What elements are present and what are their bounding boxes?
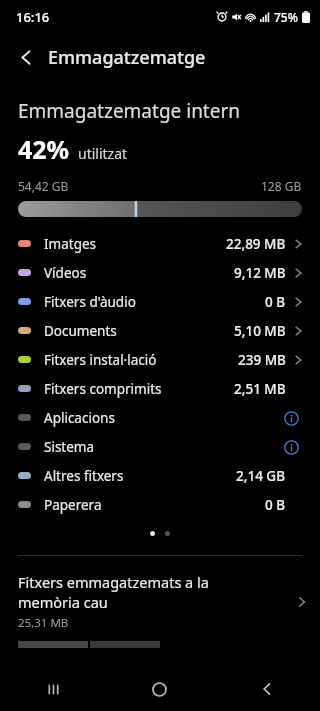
button[interactable]: Fitxers d'àudio: [0, 287, 320, 316]
button[interactable]: Aplicacions: [0, 403, 320, 432]
staticText: Fitxers emmagatzemats a la memòria cau: [18, 572, 209, 612]
staticText: 16:16: [16, 8, 50, 26]
staticText: 9,12 MB: [234, 264, 286, 282]
staticText: Emmagatzematge intern: [18, 98, 241, 124]
staticText: 0 B: [265, 496, 286, 514]
staticText: 2,14 GB: [236, 467, 286, 485]
staticText: 5,10 MB: [234, 322, 286, 340]
button[interactable]: Back: [213, 667, 320, 711]
button[interactable]: Vídeos: [0, 258, 320, 287]
staticText: 42%: [18, 132, 70, 166]
staticText: Fitxers d'àudio: [44, 293, 136, 311]
staticText: Paperera: [44, 496, 102, 514]
staticText: Sistema: [44, 438, 95, 456]
staticText: Vídeos: [44, 264, 87, 282]
button[interactable]: Fitxers comprimits: [0, 374, 320, 403]
button[interactable]: Fitxers instal·lació: [0, 345, 320, 374]
staticText: Fitxers instal·lació: [44, 351, 157, 369]
staticText: 25,31 MB: [18, 615, 69, 631]
staticText: utilitzat: [78, 144, 128, 163]
staticText: Fitxers comprimits: [44, 380, 162, 398]
staticText: 54,42 GB: [18, 178, 69, 194]
staticText: Documents: [44, 322, 117, 340]
button[interactable]: Home: [106, 667, 213, 711]
button[interactable]: Back: [8, 39, 44, 75]
staticText: 2,51 MB: [234, 380, 286, 398]
button[interactable]: Altres fitxers: [0, 461, 320, 490]
staticText: 128 GB: [261, 178, 302, 194]
button[interactable]: Sistema: [0, 432, 320, 461]
button[interactable]: Fitxers emmagatzemats a la memòria cau: [0, 556, 320, 631]
staticText: 75%: [274, 9, 298, 25]
staticText: 0 B: [265, 293, 286, 311]
staticText: Aplicacions: [44, 409, 115, 427]
staticText: Imatges: [44, 235, 97, 253]
staticText: Emmagatzematge: [48, 45, 206, 70]
button[interactable]: Documents: [0, 316, 320, 345]
staticText: Altres fitxers: [44, 467, 124, 485]
button[interactable]: Paperera: [0, 490, 320, 519]
button[interactable]: Informació Aplicacions: [280, 407, 302, 429]
staticText: 239 MB: [238, 351, 286, 369]
button[interactable]: Informació Sistema: [280, 436, 302, 458]
staticText: 22,89 MB: [226, 235, 286, 253]
button[interactable]: Recents: [0, 667, 106, 711]
button[interactable]: Imatges: [0, 229, 320, 258]
